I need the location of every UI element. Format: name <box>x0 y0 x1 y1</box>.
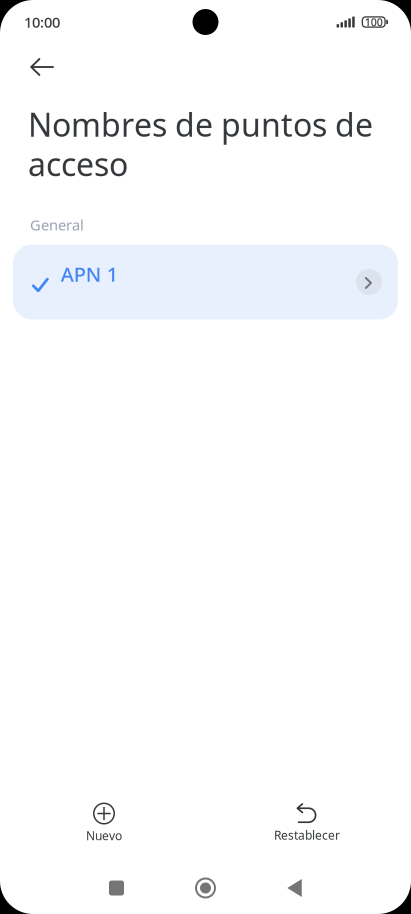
button[interactable]: Restablecer <box>232 798 382 848</box>
button[interactable]: Back <box>19 44 65 90</box>
staticText: Nombres de puntos de acceso <box>28 103 373 185</box>
staticText: Nuevo <box>86 827 122 843</box>
button[interactable]: Nuevo <box>29 798 179 848</box>
staticText: APN 1 <box>61 261 118 287</box>
staticText: 100 <box>365 15 383 29</box>
staticText: Restablecer <box>274 827 340 843</box>
button[interactable]: APN 1 <box>13 244 398 319</box>
staticText: 10:00 <box>24 12 60 32</box>
button[interactable]: Recents <box>72 862 161 914</box>
button[interactable]: Home <box>161 862 250 914</box>
button[interactable]: Back <box>250 862 339 914</box>
staticText: General <box>30 215 84 234</box>
